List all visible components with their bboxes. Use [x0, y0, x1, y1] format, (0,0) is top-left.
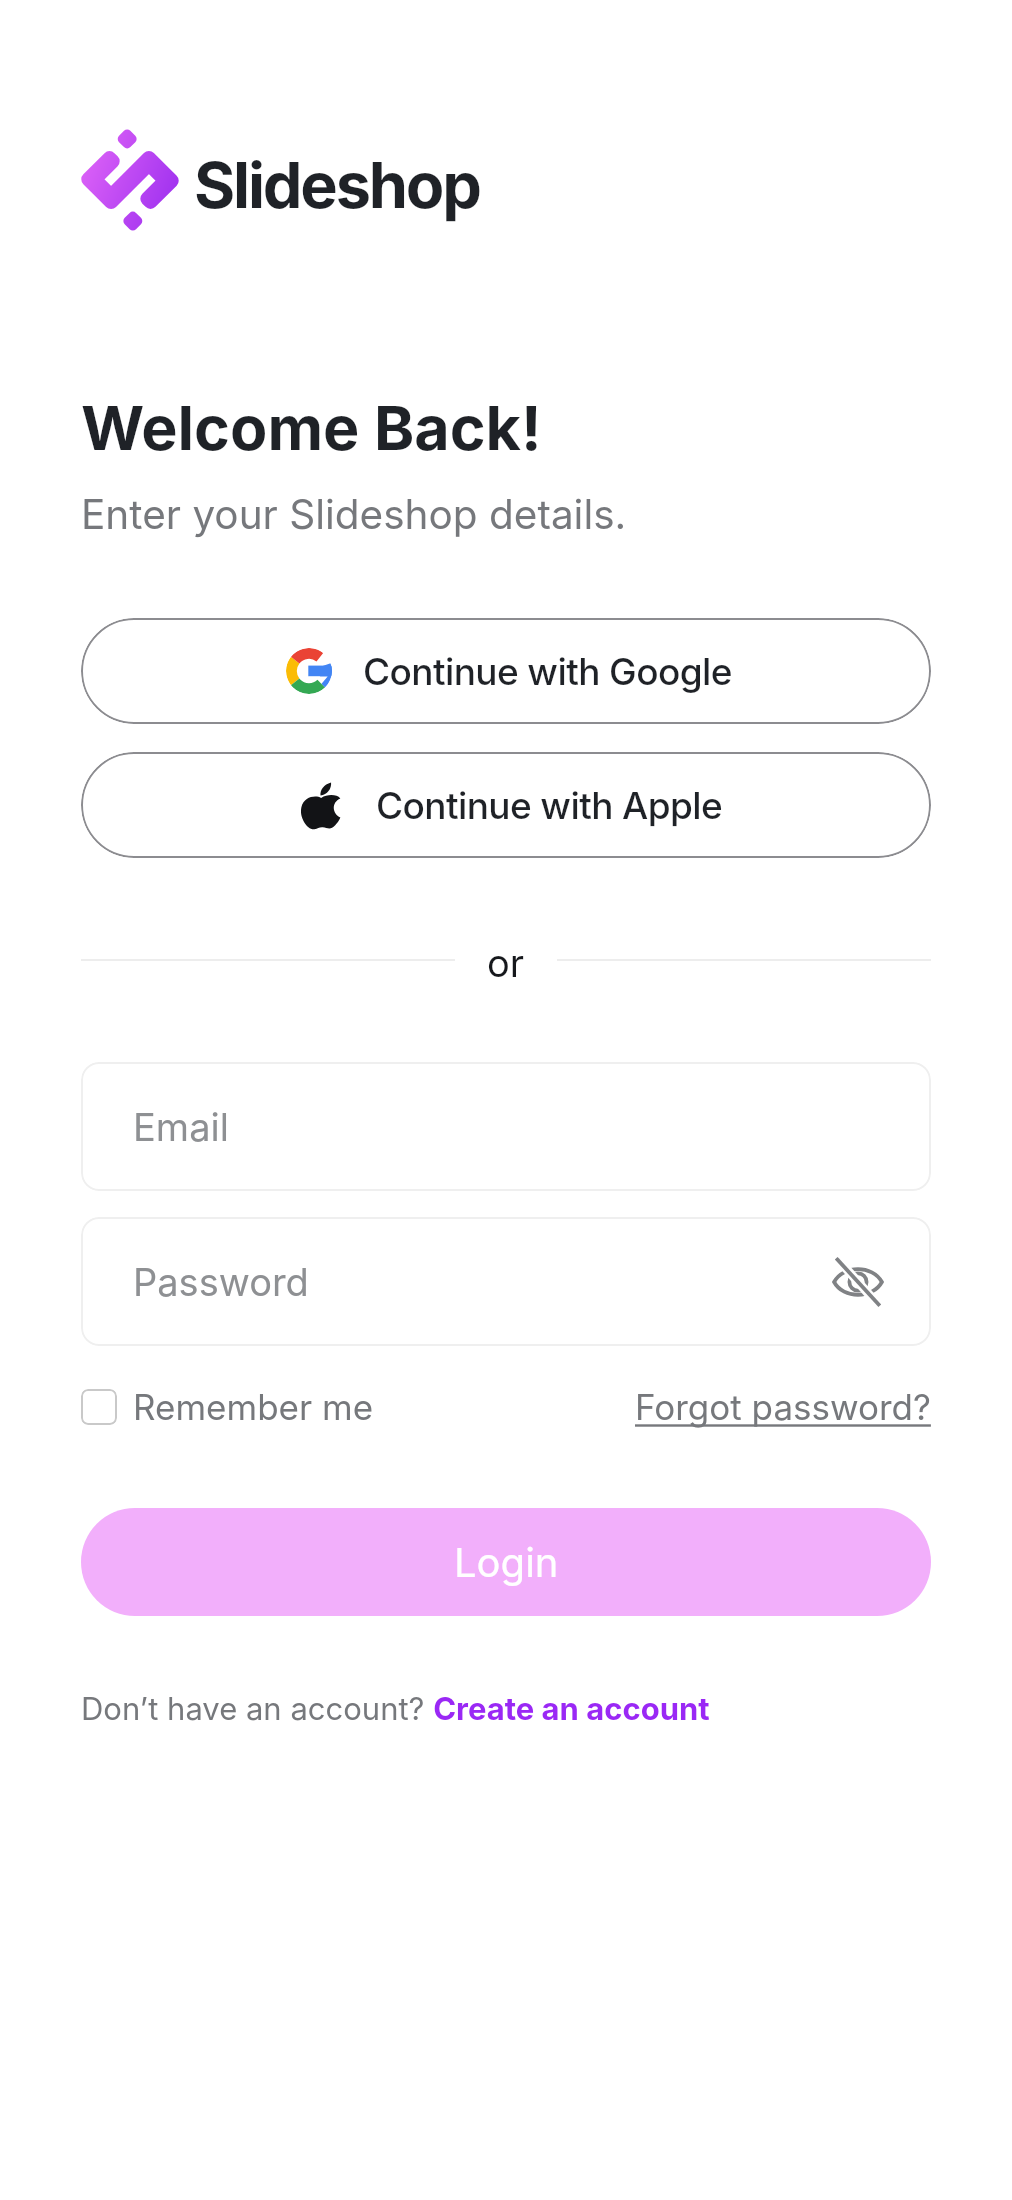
button[interactable]: Show password [829, 1253, 887, 1311]
staticText: Login [454, 1538, 559, 1586]
staticText: Welcome Back! [81, 391, 542, 465]
button[interactable]: Email [81, 1062, 931, 1191]
button[interactable]: Slideshop [74, 124, 480, 236]
staticText: Email [133, 1104, 229, 1150]
staticText: Password [133, 1259, 309, 1305]
staticText: Enter your Slideshop details. [81, 490, 627, 539]
staticText: Continue with Apple [376, 783, 723, 828]
staticText: Remember me [133, 1386, 374, 1428]
button[interactable]: Password [81, 1217, 931, 1346]
button[interactable]: Continue with Google [81, 618, 931, 724]
button[interactable]: Don’t have an account? Create an account [81, 1690, 710, 1728]
button[interactable]: Remember me [81, 1386, 374, 1428]
button[interactable]: Continue with Apple [81, 752, 931, 858]
button[interactable]: Forgot password? [635, 1386, 931, 1428]
button[interactable]: Login [81, 1508, 931, 1616]
staticText: Continue with Google [363, 649, 732, 694]
staticText: Slideshop [194, 147, 480, 223]
staticText: or [487, 940, 525, 980]
